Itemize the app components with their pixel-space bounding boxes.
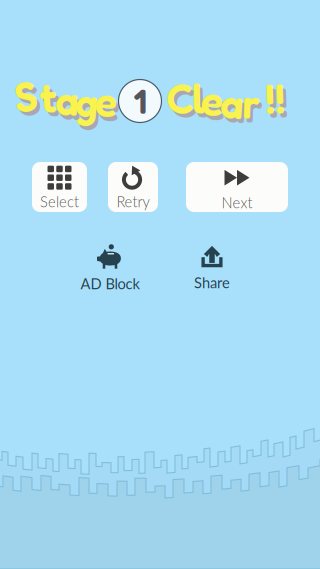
staticText: 1 <box>133 80 146 122</box>
staticText: r <box>245 82 262 132</box>
staticText: t <box>39 72 56 122</box>
staticText: r <box>242 78 259 128</box>
staticText: S <box>17 75 40 125</box>
staticText: !! <box>265 73 285 123</box>
button[interactable]: Next <box>186 162 288 212</box>
staticText: Share <box>194 274 230 291</box>
staticText: g <box>78 81 101 131</box>
staticText: C <box>169 77 196 127</box>
staticText: C <box>166 73 193 123</box>
staticText: a <box>223 82 246 132</box>
staticText: Select <box>40 193 79 210</box>
staticText: e <box>95 76 117 126</box>
staticText: t <box>42 76 59 126</box>
button[interactable]: AD Block <box>80 244 139 292</box>
staticText: g <box>75 77 98 127</box>
staticText: l <box>192 73 204 123</box>
staticText: Next <box>221 194 252 211</box>
staticText: e <box>201 75 223 125</box>
staticText: AD Block <box>80 275 139 292</box>
button[interactable]: Share <box>194 245 230 291</box>
staticText: l <box>195 77 207 127</box>
staticText: a <box>55 75 78 125</box>
button[interactable]: Retry <box>108 162 158 212</box>
staticText: a <box>58 79 81 129</box>
staticText: e <box>98 80 120 130</box>
staticText: e <box>204 79 226 129</box>
staticText: S <box>14 71 37 121</box>
button[interactable]: Select <box>32 162 87 212</box>
staticText: Retry <box>116 193 149 210</box>
staticText: a <box>220 78 243 128</box>
staticText: !! <box>268 77 288 127</box>
